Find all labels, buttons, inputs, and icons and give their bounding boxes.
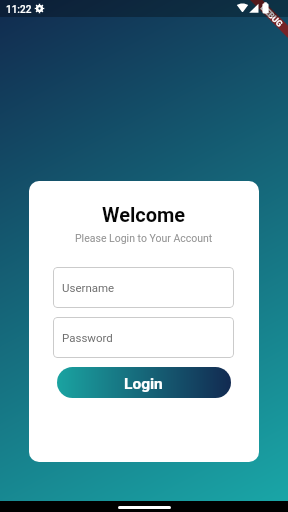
staticText: Login bbox=[124, 375, 163, 393]
staticText: Please Login to Your Account bbox=[75, 232, 213, 244]
staticText: Username bbox=[62, 281, 115, 294]
other: Settings bbox=[34, 3, 45, 14]
button[interactable]: Username bbox=[53, 267, 234, 308]
staticText: 11:22 bbox=[6, 4, 32, 16]
button[interactable]: Login bbox=[57, 367, 231, 398]
staticText: Password bbox=[62, 331, 113, 344]
staticText: Welcome bbox=[102, 203, 186, 226]
button[interactable]: Password bbox=[53, 317, 234, 358]
staticText: DEBUG bbox=[259, 3, 285, 29]
